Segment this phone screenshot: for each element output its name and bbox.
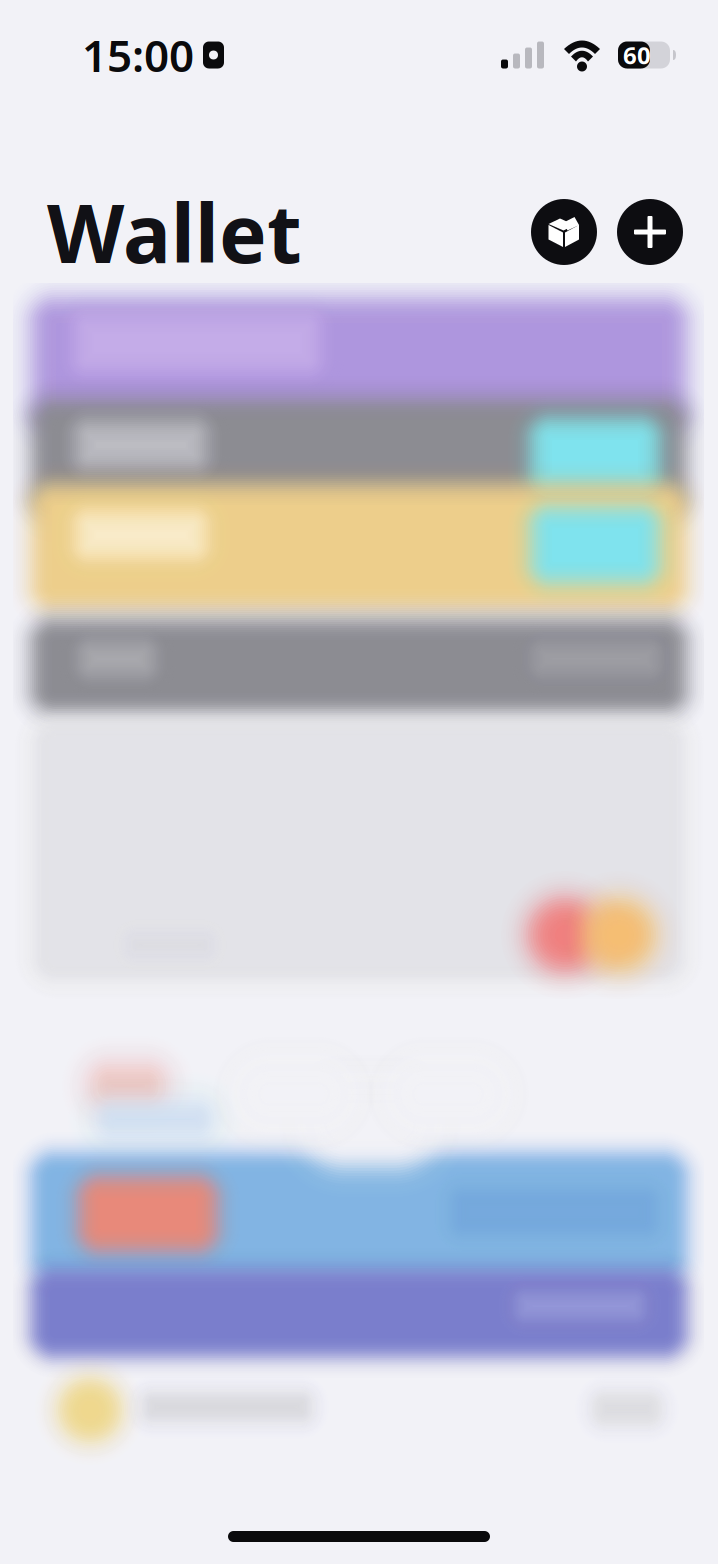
staticText: Wallet	[47, 179, 302, 285]
button[interactable]: Order tracking	[531, 199, 597, 265]
staticText: 15:00	[82, 26, 194, 84]
staticText: 60	[623, 39, 651, 71]
button[interactable]: Add card	[617, 199, 683, 265]
